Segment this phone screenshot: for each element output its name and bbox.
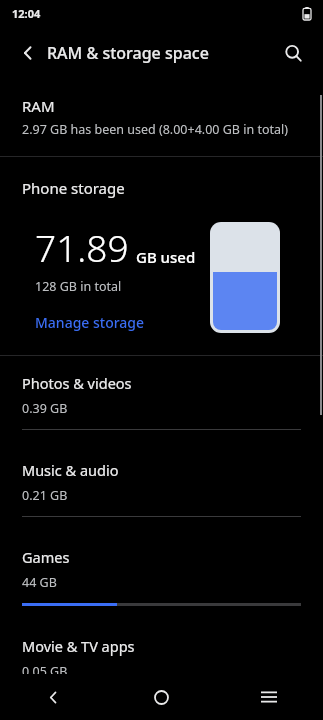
button[interactable]: Music & audio [0, 443, 323, 530]
button[interactable]: Home [107, 674, 215, 720]
button[interactable]: Manage storage [35, 313, 145, 332]
staticText: 2.97 GB has been used (8.00+4.00 GB in t… [22, 121, 288, 138]
staticText: Movie & TV apps [22, 636, 135, 656]
staticText: 44 GB [22, 574, 57, 591]
button[interactable]: Recent apps [215, 674, 323, 720]
button[interactable]: Search [273, 33, 313, 73]
button[interactable]: RAM [0, 80, 323, 156]
button[interactable]: Back [0, 674, 107, 720]
button[interactable]: Photos & videos [0, 356, 323, 443]
button[interactable]: Games [0, 530, 323, 619]
button[interactable]: Movie & TV apps [0, 619, 323, 706]
staticText: Music & audio [22, 460, 119, 480]
staticText: 0.39 GB [22, 400, 68, 417]
staticText: GB used [136, 247, 196, 267]
staticText: Phone storage [22, 178, 125, 198]
staticText: 128 GB in total [35, 278, 122, 295]
staticText: 0.05 GB [22, 663, 68, 680]
button[interactable]: Back [8, 33, 48, 73]
staticText: 71.89 [35, 222, 129, 272]
staticText: RAM & storage space [47, 42, 209, 64]
staticText: Photos & videos [22, 373, 132, 393]
staticText: 0.21 GB [22, 487, 68, 504]
staticText: 12:04 [12, 6, 41, 21]
staticText: Manage storage [35, 313, 145, 332]
staticText: RAM [22, 96, 55, 116]
staticText: Games [22, 547, 70, 567]
